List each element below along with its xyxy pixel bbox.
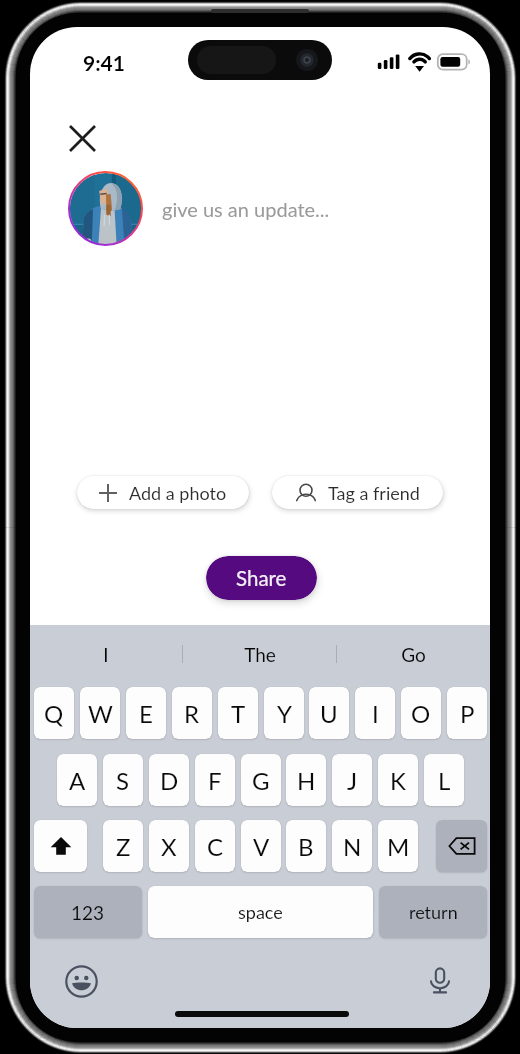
button[interactable]: C	[195, 820, 235, 872]
button[interactable]: return	[379, 886, 487, 938]
staticText: Share	[236, 566, 287, 591]
staticText: H	[297, 766, 316, 795]
staticText: G	[252, 766, 270, 795]
staticText: Tag a friend	[328, 482, 420, 504]
button[interactable]: The	[183, 633, 336, 675]
staticText: S	[116, 766, 130, 795]
button[interactable]: Emoji	[59, 959, 103, 1003]
button[interactable]: G	[241, 754, 281, 806]
button[interactable]: U	[309, 687, 349, 739]
button[interactable]: H	[286, 754, 326, 806]
staticText: L	[438, 766, 451, 795]
button[interactable]: O	[401, 687, 441, 739]
staticText: W	[88, 699, 113, 728]
staticText: 123	[71, 901, 105, 924]
staticText: F	[208, 766, 222, 795]
button[interactable]: B	[286, 820, 326, 872]
staticText: E	[139, 699, 153, 728]
staticText: O	[411, 699, 431, 728]
button[interactable]: Y	[264, 687, 304, 739]
staticText: Z	[116, 832, 131, 861]
button[interactable]: S	[103, 754, 143, 806]
button[interactable]: Tag a friend	[272, 476, 443, 509]
staticText: A	[69, 766, 86, 795]
button[interactable]: 123	[34, 886, 142, 938]
staticText: X	[161, 832, 177, 861]
staticText: U	[320, 699, 338, 728]
button[interactable]: E	[126, 687, 166, 739]
button[interactable]: Share	[206, 556, 317, 600]
button[interactable]: Profile photo	[70, 173, 142, 245]
staticText: M	[387, 832, 410, 861]
staticText: return	[409, 901, 458, 923]
button[interactable]: L	[424, 754, 464, 806]
button[interactable]: space	[148, 886, 373, 938]
button[interactable]: Go	[337, 633, 490, 675]
button[interactable]: I	[30, 633, 182, 675]
button[interactable]: R	[172, 687, 212, 739]
staticText: Q	[44, 699, 64, 728]
button[interactable]: V	[241, 820, 281, 872]
button[interactable]: A	[57, 754, 97, 806]
button[interactable]: M	[378, 820, 418, 872]
staticText: Go	[401, 643, 426, 666]
button[interactable]	[34, 820, 87, 872]
staticText: Add a photo	[129, 482, 227, 504]
button[interactable]: N	[332, 820, 372, 872]
button[interactable]: I	[355, 687, 395, 739]
button[interactable]: W	[80, 687, 120, 739]
staticText: P	[460, 699, 475, 728]
button[interactable]: D	[149, 754, 189, 806]
staticText: N	[343, 832, 362, 861]
staticText: space	[238, 901, 283, 923]
button[interactable]: F	[195, 754, 235, 806]
button[interactable]: J	[332, 754, 372, 806]
staticText: K	[390, 766, 406, 795]
staticText: give us an update...	[162, 197, 330, 221]
staticText: D	[160, 766, 179, 795]
button[interactable]	[436, 820, 487, 872]
staticText: T	[231, 699, 246, 728]
staticText: C	[207, 832, 224, 861]
staticText: R	[184, 699, 200, 728]
staticText: B	[298, 832, 314, 861]
staticText: I	[103, 643, 109, 666]
button[interactable]: Dictate	[418, 959, 462, 1003]
staticText: V	[253, 832, 270, 861]
staticText: Y	[277, 699, 292, 728]
staticText: J	[347, 766, 358, 795]
button[interactable]: P	[447, 687, 487, 739]
staticText: The	[244, 643, 276, 666]
button[interactable]: K	[378, 754, 418, 806]
button[interactable]: Q	[34, 687, 74, 739]
button[interactable]: Close	[58, 114, 107, 163]
button[interactable]: Z	[103, 820, 143, 872]
button[interactable]: Add a photo	[77, 476, 249, 509]
button[interactable]: X	[149, 820, 189, 872]
button[interactable]: T	[218, 687, 258, 739]
staticText: 9:41	[83, 50, 125, 74]
staticText: I	[372, 699, 379, 728]
